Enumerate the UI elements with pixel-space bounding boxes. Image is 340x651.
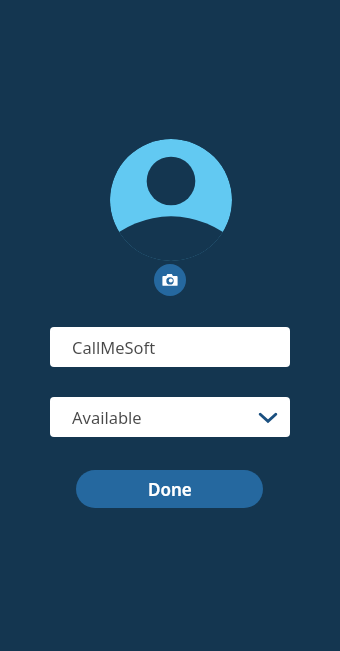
button[interactable]: Done	[76, 470, 263, 508]
staticText: Done	[148, 478, 192, 501]
staticText: CallMeSoft	[72, 336, 156, 358]
button[interactable]: CallMeSoft	[50, 327, 290, 367]
button[interactable]: Change profile photo	[154, 264, 186, 296]
button[interactable]: Profile photo	[110, 139, 232, 261]
staticText: Available	[72, 406, 142, 428]
button[interactable]: Available	[50, 397, 290, 437]
